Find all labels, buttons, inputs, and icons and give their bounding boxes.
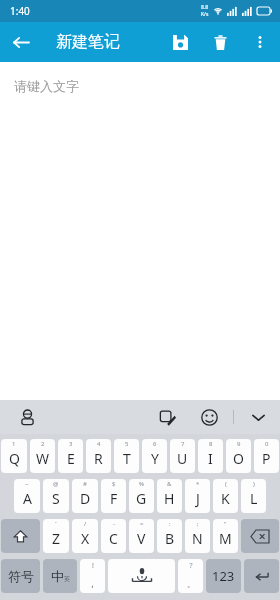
staticText: ; [197, 520, 199, 528]
button[interactable]: % [129, 479, 154, 513]
button[interactable]: ? [178, 559, 203, 593]
staticText: * [196, 480, 200, 488]
button[interactable]: Input language [14, 404, 40, 430]
staticText: $ [112, 480, 116, 488]
button[interactable]: ` [43, 519, 69, 553]
staticText: " [224, 520, 227, 528]
button[interactable]: Shift [1, 519, 40, 553]
staticText: H [164, 489, 175, 508]
button[interactable]: " [213, 519, 238, 553]
staticText: & [167, 480, 172, 488]
staticText: : [169, 520, 171, 528]
staticText: 8.8 [201, 4, 209, 11]
button[interactable]: = [129, 519, 154, 553]
staticText: 新建笔记 [56, 32, 120, 52]
button[interactable]: * [185, 479, 210, 513]
button[interactable]: Save [160, 22, 200, 62]
button[interactable]: 1 [1, 439, 27, 473]
staticText: = [140, 520, 144, 528]
button[interactable]: Space [108, 559, 175, 593]
staticText: N [192, 529, 203, 548]
button[interactable]: : [157, 519, 182, 553]
staticText: ~ [25, 480, 29, 488]
button[interactable]: ) [241, 479, 266, 513]
staticText: 英 [64, 575, 70, 583]
staticText: @ [53, 480, 59, 488]
button[interactable]: 2 [30, 439, 55, 473]
staticText: U [177, 449, 188, 468]
staticText: - [113, 520, 115, 528]
staticText: M [219, 529, 232, 548]
button[interactable]: 6 [142, 439, 167, 473]
button[interactable]: Back [0, 22, 40, 62]
button[interactable]: $ [101, 479, 126, 513]
staticText: C [109, 529, 118, 548]
button[interactable]: ! [80, 559, 105, 593]
staticText: T [123, 449, 131, 468]
staticText: K/s [201, 11, 209, 18]
staticText: Q [9, 449, 20, 468]
staticText: 4 [97, 440, 101, 448]
staticText: , [91, 578, 94, 589]
staticText: ` [55, 520, 57, 528]
staticText: ! [92, 561, 94, 571]
button[interactable]: More options [240, 22, 280, 62]
staticText: F [110, 489, 118, 508]
staticText: L [250, 489, 258, 508]
staticText: B [165, 529, 175, 548]
button[interactable]: 123 [206, 559, 241, 593]
staticText: ) [253, 480, 255, 488]
staticText: 9 [237, 440, 241, 448]
button[interactable]: 9 [226, 439, 251, 473]
staticText: P [262, 449, 271, 468]
staticText: 6 [153, 440, 157, 448]
staticText: / [84, 520, 87, 528]
button[interactable]: 5 [114, 439, 139, 473]
staticText: J [196, 489, 200, 508]
staticText: Z [52, 529, 61, 548]
button[interactable]: Enter [244, 559, 279, 593]
button[interactable]: Hide keyboard [244, 403, 272, 431]
staticText: X [81, 529, 90, 548]
staticText: 2 [41, 440, 45, 448]
staticText: O [233, 449, 244, 468]
button[interactable]: 4 [86, 439, 111, 473]
button[interactable]: 8 [198, 439, 223, 473]
staticText: I [208, 449, 213, 468]
button[interactable]: @ [43, 479, 69, 513]
staticText: 请键入文字 [14, 78, 79, 94]
staticText: % [139, 480, 144, 488]
staticText: 。 [187, 579, 195, 589]
button[interactable]: ~ [14, 479, 40, 513]
staticText: 0 [265, 440, 269, 448]
button[interactable]: 3 [58, 439, 83, 473]
staticText: V [137, 529, 146, 548]
staticText: A [23, 489, 32, 508]
button[interactable]: # [72, 479, 98, 513]
staticText: ( [225, 480, 227, 488]
staticText: 3 [69, 440, 73, 448]
staticText: 符号 [8, 568, 34, 584]
staticText: S [52, 489, 60, 508]
button[interactable]: 中 [43, 559, 77, 593]
button[interactable]: 0 [254, 439, 279, 473]
button[interactable]: ( [213, 479, 238, 513]
button[interactable]: - [101, 519, 126, 553]
staticText: K [221, 489, 230, 508]
staticText: 1 [12, 440, 16, 448]
staticText: 中 [51, 568, 64, 584]
staticText: D [80, 489, 91, 508]
button[interactable]: ; [185, 519, 210, 553]
button[interactable]: Backspace [241, 519, 279, 553]
button[interactable]: 7 [170, 439, 195, 473]
staticText: ? [189, 561, 193, 571]
button[interactable]: 符号 [1, 559, 40, 593]
button[interactable]: / [72, 519, 98, 553]
button[interactable]: AI writing [153, 403, 181, 431]
button[interactable]: Emoji [195, 403, 223, 431]
staticText: 5 [125, 440, 129, 448]
button[interactable]: Delete [200, 22, 240, 62]
staticText: 1:40 [10, 4, 30, 18]
staticText: G [136, 489, 147, 508]
button[interactable]: & [157, 479, 182, 513]
